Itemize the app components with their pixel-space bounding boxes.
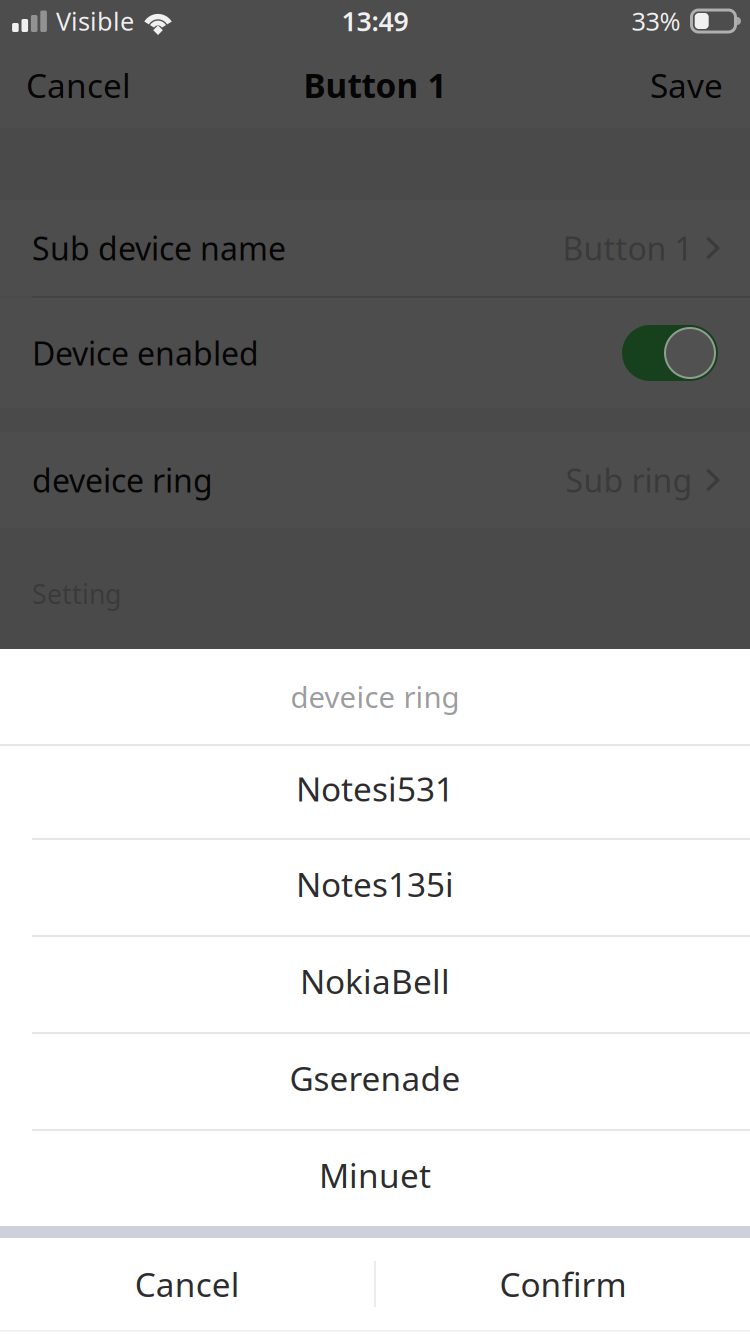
- staticText: Sub device name: [32, 227, 286, 269]
- staticText: Gserenade: [289, 1056, 460, 1100]
- button[interactable]: Cancel: [0, 1238, 374, 1330]
- staticText: Cancel: [135, 1262, 240, 1306]
- button[interactable]: Cancel: [22, 54, 135, 116]
- staticText: 33%: [631, 4, 680, 38]
- button[interactable]: Confirm: [376, 1238, 750, 1330]
- staticText: Device enabled: [32, 332, 259, 374]
- staticText: Sub ring: [565, 459, 692, 501]
- button[interactable]: Gserenade: [0, 1034, 750, 1129]
- button[interactable]: deveice ring: [0, 432, 750, 528]
- button[interactable]: Notes135i: [0, 840, 750, 935]
- staticText: Notes135i: [296, 862, 454, 906]
- staticText: Minuet: [319, 1153, 431, 1197]
- staticText: Button 1: [562, 227, 692, 269]
- button[interactable]: Sub device name: [0, 200, 750, 296]
- staticText: 13:49: [341, 3, 408, 39]
- button[interactable]: Minuet: [0, 1131, 750, 1226]
- button[interactable]: NokiaBell: [0, 937, 750, 1032]
- staticText: NokiaBell: [300, 959, 450, 1003]
- staticText: Button 1: [303, 63, 446, 107]
- staticText: Save: [650, 63, 723, 107]
- staticText: Cancel: [26, 63, 131, 107]
- button[interactable]: Notesi531: [0, 746, 750, 838]
- button[interactable]: Device enabled toggle: [0, 298, 750, 408]
- staticText: deveice ring: [32, 459, 213, 501]
- staticText: Notesi531: [296, 766, 454, 811]
- button[interactable]: Save: [646, 54, 727, 116]
- staticText: Setting: [32, 576, 121, 611]
- staticText: Confirm: [499, 1262, 626, 1306]
- staticText: Visible: [56, 4, 134, 38]
- staticText: deveice ring: [290, 677, 459, 716]
